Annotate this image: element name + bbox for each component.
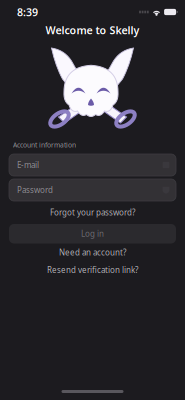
- button[interactable]: Log in: [9, 224, 176, 243]
- staticText: Log in: [81, 228, 104, 239]
- staticText: Welcome to Skelly: [45, 23, 139, 37]
- button[interactable]: Need an account?: [0, 243, 185, 261]
- button[interactable]: Resend verification link?: [0, 261, 185, 278]
- staticText: Resend verification link?: [47, 265, 138, 275]
- staticText: 8:39: [17, 5, 38, 19]
- staticText: Need an account?: [59, 247, 126, 258]
- staticText: Forgot your password?: [50, 207, 135, 218]
- staticText: Account information: [13, 141, 76, 149]
- staticText: Password: [17, 185, 53, 195]
- staticText: E-mail: [17, 160, 39, 170]
- button[interactable]: Forgot your password?: [0, 201, 185, 224]
